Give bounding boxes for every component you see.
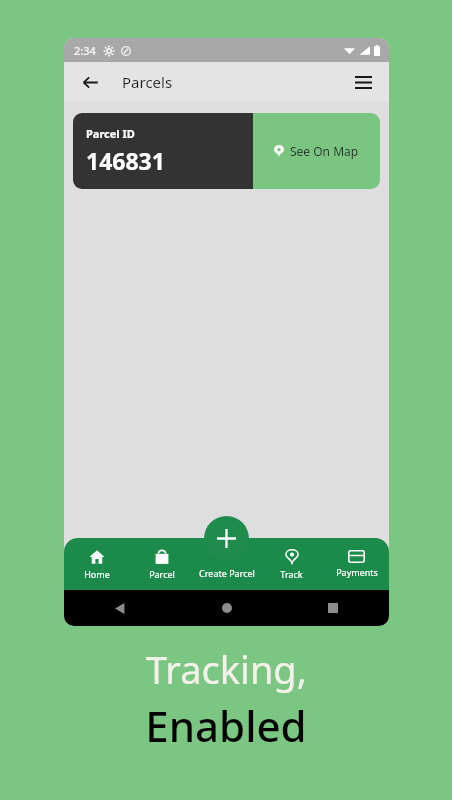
staticText: Parcel ID — [86, 126, 135, 141]
button[interactable]: Back — [76, 68, 104, 96]
staticText: 2:34 — [74, 43, 96, 58]
staticText: Enabled — [145, 697, 307, 754]
button[interactable]: Payments — [324, 538, 389, 590]
button[interactable]: Recents — [321, 596, 345, 620]
staticText: 146831 — [86, 145, 165, 176]
button[interactable]: Home — [64, 538, 129, 590]
staticText: See On Map — [290, 143, 359, 159]
button[interactable]: Create Parcel — [204, 516, 249, 561]
staticText: Parcels — [122, 72, 173, 92]
staticText: Tracking, — [146, 643, 307, 695]
staticText: Home — [84, 568, 110, 580]
button[interactable]: Back — [108, 596, 132, 620]
button[interactable]: Home — [215, 596, 239, 620]
staticText: Payments — [336, 566, 378, 578]
button[interactable]: Menu — [349, 68, 377, 96]
staticText: Track — [280, 568, 303, 580]
button[interactable]: See On Map — [253, 113, 380, 189]
staticText: Create Parcel — [199, 567, 255, 579]
staticText: Parcel — [149, 568, 175, 580]
button[interactable]: Track — [259, 538, 324, 590]
button[interactable]: Parcel ID — [73, 113, 253, 189]
button[interactable]: Parcel — [129, 538, 194, 590]
button[interactable]: Create Parcel — [194, 538, 259, 590]
